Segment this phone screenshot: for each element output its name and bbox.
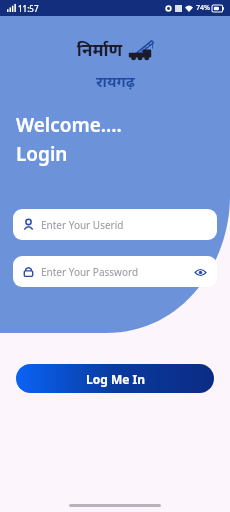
button[interactable]: Log Me In <box>16 364 214 393</box>
staticText: 11:57 <box>18 3 39 14</box>
staticText: Log Me In <box>86 371 145 387</box>
staticText: Enter Your Userid <box>41 218 124 232</box>
staticText: Welcome.... <box>16 112 122 138</box>
staticText: Enter Your Password <box>41 265 139 279</box>
button[interactable]: Enter Your Userid <box>13 209 217 240</box>
button[interactable]: Enter Your Password <box>13 256 217 287</box>
staticText: रायगढ़ <box>96 71 135 91</box>
staticText: 74% <box>196 3 210 13</box>
staticText: Login <box>16 141 68 167</box>
staticText: निर्माण <box>77 38 123 61</box>
button[interactable]: Show password <box>193 265 207 279</box>
